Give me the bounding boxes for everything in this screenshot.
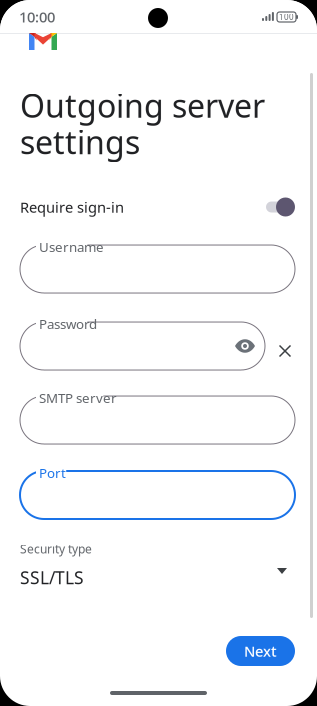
button[interactable]: Clear password [271,337,299,365]
staticText: Require sign-in [20,197,124,217]
staticText: SMTP server [39,389,117,407]
button[interactable]: Next [226,636,295,666]
staticText: Username [39,238,104,256]
staticText: settings [20,120,140,163]
staticText: Next [244,641,277,661]
staticText: Security type [20,541,92,557]
button[interactable]: Require sign-in [20,194,295,220]
staticText: 10:00 [19,7,55,26]
staticText: 100 [279,12,294,22]
staticText: SSL/TLS [20,566,84,589]
staticText: Outgoing server [20,84,265,126]
staticText: Port [39,464,66,482]
staticText: Password [39,315,97,333]
button[interactable]: Security type [20,542,295,592]
